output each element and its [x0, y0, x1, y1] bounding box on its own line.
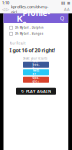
staticText: ▮▮ ◼: [61, 0, 70, 5]
staticText: K: [16, 12, 22, 24]
button[interactable]: Google+: [23, 77, 49, 83]
button[interactable]: Oh My Girl - Bungee: [9, 32, 62, 35]
button[interactable]: Search: [58, 15, 65, 22]
staticText: Twitter: [32, 69, 39, 76]
staticText: Oh My Girl - Bungee: [15, 32, 44, 35]
button[interactable]: ↻ PLAY AGAIN: [16, 88, 56, 95]
staticText: kprofiles.com/oh-my-girl: [11, 4, 48, 14]
staticText: Q: [60, 15, 64, 22]
button[interactable]: Facebook: [23, 62, 49, 68]
button[interactable]: Oh My Girl - Dolphin: [9, 26, 62, 29]
staticText: Facebook: [32, 59, 39, 70]
staticText: AA: [64, 7, 70, 12]
staticText: Google+: [32, 76, 39, 83]
staticText: Oh My Girl - Dolphin: [15, 26, 44, 29]
button[interactable]: Twitter: [23, 69, 49, 75]
staticText: 1:10: [2, 0, 9, 5]
staticText: ↻ PLAY AGAIN: [21, 89, 51, 94]
staticText: Your Result: [9, 42, 25, 45]
staticText: Profiles: [22, 8, 50, 29]
staticText: I got 16 of 20 right!: [9, 47, 55, 54]
staticText: ◁ ▷: [2, 7, 9, 11]
staticText: Share your results: [23, 57, 47, 60]
